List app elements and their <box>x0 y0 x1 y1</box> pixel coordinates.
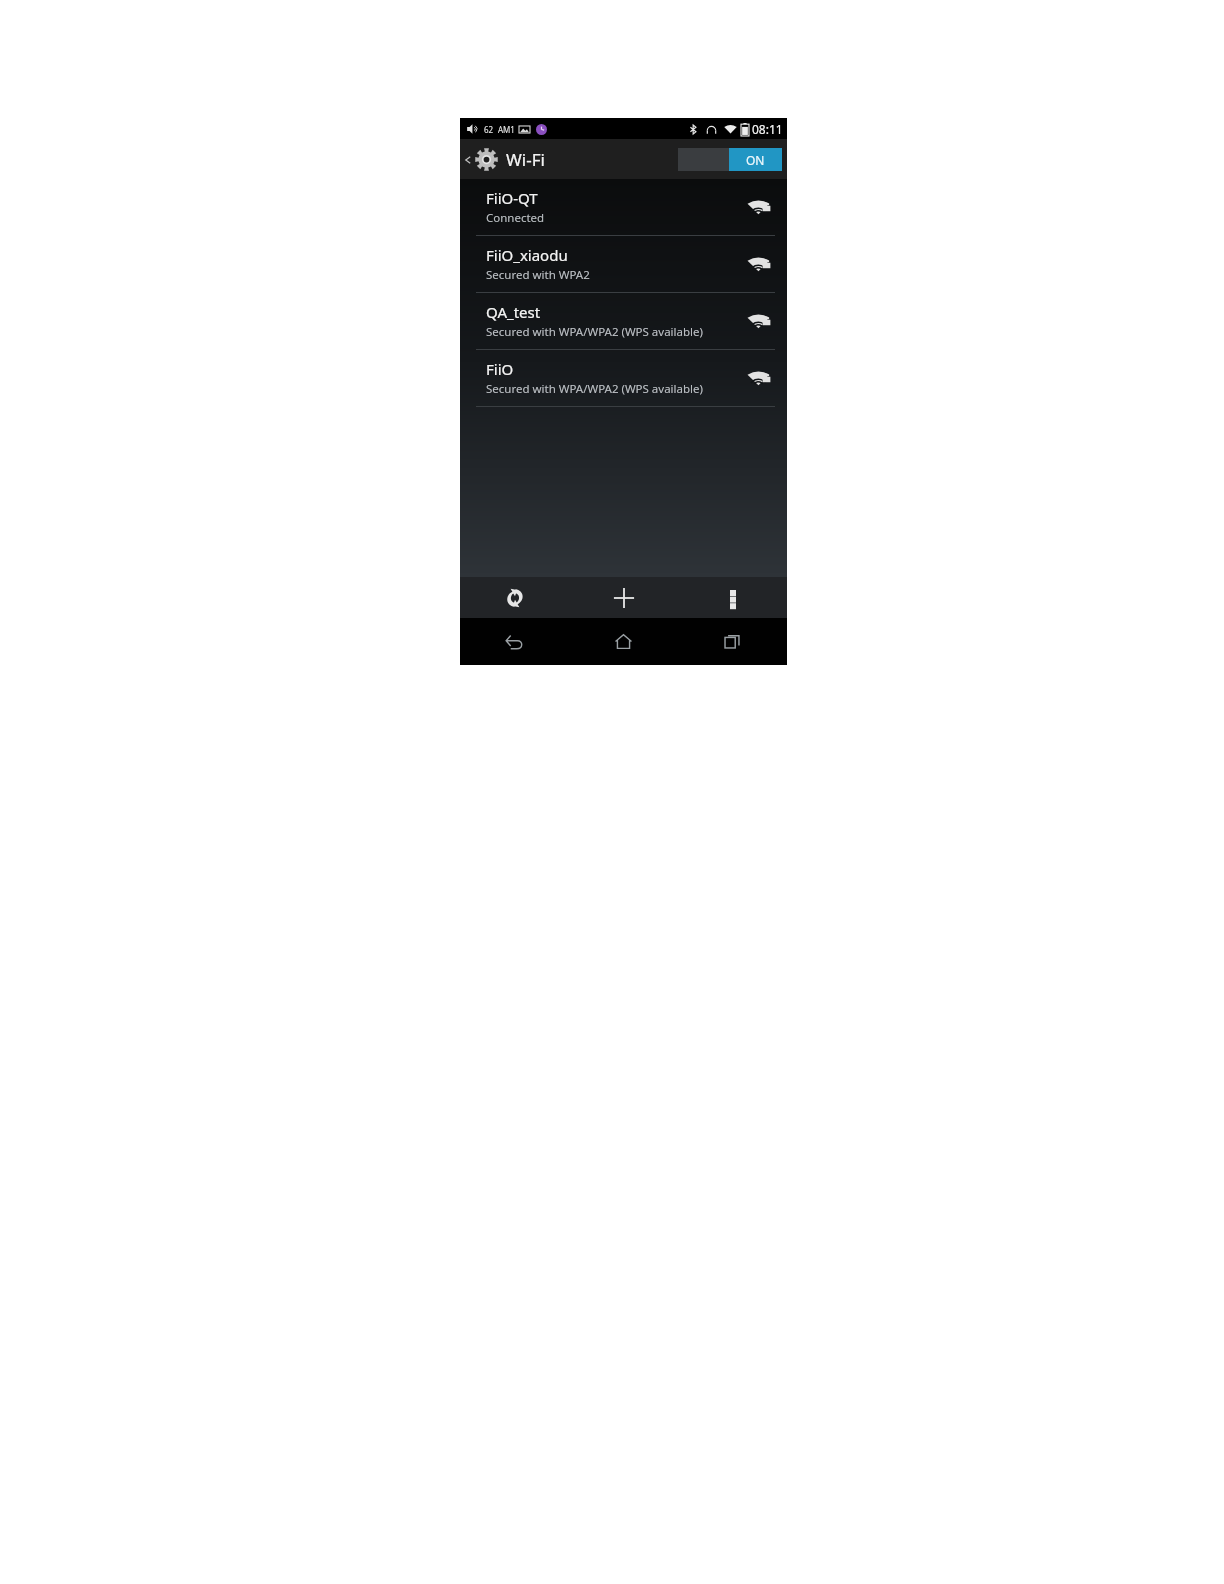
other: Secured network signal <box>747 254 773 274</box>
button[interactable]: Add network <box>569 577 678 618</box>
button[interactable]: More options <box>678 577 787 618</box>
staticText: ON <box>746 152 765 168</box>
other: WPS push button <box>504 587 526 609</box>
staticText: Secured with WPA/WPA2 (WPS available) <box>486 381 703 397</box>
staticText: FiiO-QT <box>486 188 538 208</box>
button[interactable]: Wi-Fi on <box>678 148 782 171</box>
staticText: Secured with WPA/WPA2 (WPS available) <box>486 324 703 340</box>
staticText: AM1 <box>498 124 515 135</box>
button[interactable]: FiiO_xiaodu <box>460 236 787 292</box>
staticText: FiiO_xiaodu <box>486 245 568 265</box>
other: Back <box>505 632 524 651</box>
other: Back <box>464 156 472 164</box>
other: Secured network signal <box>747 197 773 217</box>
other: Secured network signal <box>747 311 773 331</box>
other: More options <box>730 588 736 608</box>
button[interactable]: Home <box>569 618 678 665</box>
staticText: QA_test <box>486 302 541 322</box>
other: Add network <box>612 586 636 610</box>
other: Recent apps <box>724 633 741 650</box>
staticText: Wi-Fi <box>506 148 545 171</box>
staticText: 62 <box>484 124 494 135</box>
button[interactable]: FiiO <box>460 350 787 406</box>
button[interactable]: WPS push button <box>460 577 569 618</box>
staticText: Connected <box>486 210 545 226</box>
button[interactable]: QA_test <box>460 293 787 349</box>
button[interactable]: Recent apps <box>678 618 787 665</box>
other: Secured network signal <box>747 368 773 388</box>
button[interactable]: Back <box>460 618 569 665</box>
button[interactable]: FiiO-QT <box>460 179 787 235</box>
button[interactable]: Back <box>460 147 553 172</box>
staticText: FiiO <box>486 359 514 379</box>
other: Home <box>614 632 633 651</box>
staticText: 08:11 <box>752 121 783 137</box>
staticText: Secured with WPA2 <box>486 267 590 283</box>
